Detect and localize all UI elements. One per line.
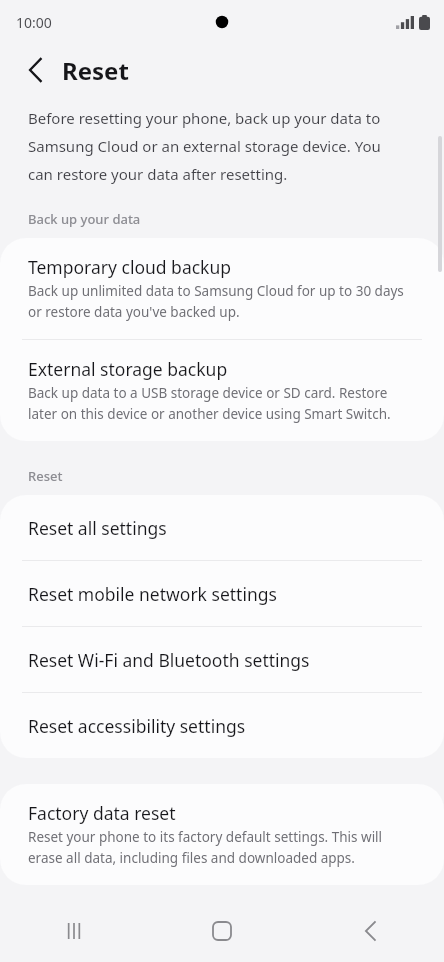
button[interactable]: Recent apps	[0, 900, 148, 962]
staticText: Reset mobile network settings	[28, 582, 277, 606]
button[interactable]: Home	[148, 900, 296, 962]
staticText: Back up data to a USB storage device or …	[28, 384, 412, 423]
button[interactable]: Temporary cloud backup	[0, 238, 444, 339]
button[interactable]: Factory data reset	[0, 784, 444, 885]
button[interactable]: Back	[14, 49, 56, 91]
staticText: Reset	[62, 54, 129, 87]
staticText: Reset Wi-Fi and Bluetooth settings	[28, 648, 310, 672]
staticText: Reset	[28, 467, 63, 485]
button[interactable]: Reset mobile network settings	[0, 561, 444, 626]
button[interactable]: Reset accessibility settings	[0, 693, 444, 758]
staticText: 10:00	[16, 13, 52, 32]
staticText: Temporary cloud backup	[28, 255, 232, 279]
button[interactable]: Reset Wi-Fi and Bluetooth settings	[0, 627, 444, 692]
staticText: External storage backup	[28, 357, 228, 381]
staticText: Factory data reset	[28, 801, 176, 825]
button[interactable]: External storage backup	[0, 340, 444, 441]
staticText: Reset your phone to its factory default …	[28, 828, 412, 867]
staticText: Reset all settings	[28, 516, 167, 540]
staticText: Back up your data	[28, 210, 141, 228]
staticText: Reset accessibility settings	[28, 714, 246, 738]
button[interactable]: Reset all settings	[0, 495, 444, 560]
staticText: Back up unlimited data to Samsung Cloud …	[28, 282, 412, 321]
staticText: Before resetting your phone, back up you…	[28, 108, 408, 184]
button[interactable]: Back	[296, 900, 444, 962]
